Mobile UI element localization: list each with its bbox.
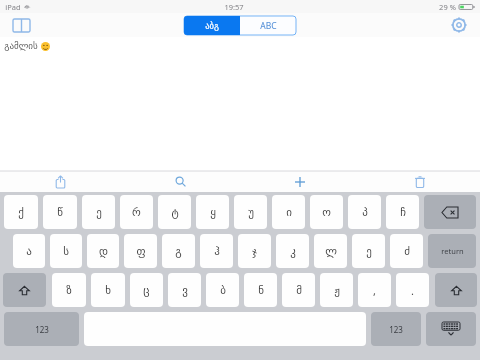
button[interactable]: ჰ bbox=[200, 234, 233, 268]
staticText: ა bbox=[26, 245, 32, 258]
staticText: რ bbox=[132, 206, 141, 219]
staticText: მ bbox=[296, 284, 302, 297]
staticText: ძ bbox=[404, 245, 410, 258]
button[interactable]: return bbox=[428, 234, 476, 268]
staticText: გამლის bbox=[4, 41, 38, 51]
button[interactable]: Shift bbox=[3, 273, 46, 307]
button[interactable]: ვ bbox=[168, 273, 201, 307]
button[interactable]: ნ bbox=[244, 273, 277, 307]
staticText: აბგ bbox=[205, 21, 219, 31]
button[interactable]: Hide keyboard bbox=[426, 312, 476, 346]
button[interactable]: ფ bbox=[124, 234, 157, 268]
button[interactable]: 123 bbox=[4, 312, 79, 346]
button[interactable]: წ bbox=[43, 195, 77, 229]
staticText: 123 bbox=[35, 324, 49, 335]
button[interactable]: Backspace bbox=[424, 195, 476, 229]
staticText: ნ bbox=[258, 284, 264, 297]
staticText: ფ bbox=[136, 245, 146, 258]
staticText: ქ bbox=[18, 206, 24, 219]
button[interactable]: Delete bbox=[360, 171, 480, 192]
staticText: ჩ bbox=[400, 206, 406, 219]
button[interactable]: . bbox=[396, 273, 429, 307]
staticText: ჯ bbox=[252, 245, 257, 258]
button[interactable]: ჯ bbox=[238, 234, 271, 268]
button[interactable]: ხ bbox=[91, 273, 125, 307]
staticText: 19:57 bbox=[224, 2, 244, 12]
staticText: ზ bbox=[66, 284, 72, 297]
staticText: წ bbox=[57, 206, 63, 219]
button[interactable]: დ bbox=[87, 234, 119, 268]
staticText: ხ bbox=[105, 284, 111, 297]
staticText: კ bbox=[290, 245, 296, 258]
button[interactable]: ბ bbox=[206, 273, 239, 307]
staticText: უ bbox=[248, 206, 254, 219]
button[interactable]: ქ bbox=[4, 195, 38, 229]
staticText: 123 bbox=[389, 324, 403, 335]
button[interactable]: ე bbox=[352, 234, 385, 268]
staticText: ს bbox=[63, 245, 69, 258]
button[interactable]: აბგ bbox=[184, 16, 240, 35]
button[interactable]: Share bbox=[0, 171, 120, 192]
button[interactable]: ა bbox=[13, 234, 45, 268]
staticText: . bbox=[411, 283, 414, 298]
staticText: ი bbox=[286, 206, 292, 219]
button[interactable]: რ bbox=[120, 195, 153, 229]
button[interactable]: ჩ bbox=[386, 195, 419, 229]
button[interactable]: Library bbox=[8, 13, 34, 37]
button[interactable]: ე bbox=[82, 195, 115, 229]
button[interactable]: 123 bbox=[371, 312, 421, 346]
staticText: ყ bbox=[210, 206, 216, 219]
button[interactable]: ი bbox=[272, 195, 305, 229]
button[interactable]: Search bbox=[120, 171, 240, 192]
button[interactable]: პ bbox=[348, 195, 381, 229]
staticText: გ bbox=[175, 245, 182, 258]
staticText: return bbox=[441, 246, 464, 256]
staticText: ც bbox=[143, 284, 150, 297]
staticText: ე bbox=[366, 245, 372, 258]
button[interactable]: ო bbox=[310, 195, 343, 229]
staticText: ე bbox=[96, 206, 102, 219]
button[interactable]: ზ bbox=[52, 273, 86, 307]
button[interactable]: უ bbox=[234, 195, 267, 229]
staticText: , bbox=[373, 283, 376, 298]
staticText: ტ bbox=[171, 206, 179, 219]
button[interactable]: ს bbox=[50, 234, 82, 268]
staticText: ჰ bbox=[214, 245, 220, 258]
button[interactable]: Settings bbox=[446, 13, 472, 37]
button[interactable]: ჟ bbox=[320, 273, 353, 307]
staticText: iPad bbox=[5, 2, 21, 12]
staticText: ბ bbox=[220, 284, 226, 297]
button[interactable]: , bbox=[358, 273, 391, 307]
button[interactable]: ყ bbox=[196, 195, 229, 229]
button[interactable]: მ bbox=[282, 273, 315, 307]
staticText: ვ bbox=[182, 284, 188, 297]
button[interactable]: გ bbox=[162, 234, 195, 268]
button[interactable]: Add bbox=[240, 171, 360, 192]
button[interactable]: ც bbox=[130, 273, 163, 307]
button[interactable]: კ bbox=[276, 234, 309, 268]
staticText: 29 % bbox=[439, 2, 456, 12]
button[interactable]: ლ bbox=[314, 234, 347, 268]
button[interactable]: Shift bbox=[435, 273, 477, 307]
staticText: პ bbox=[362, 206, 368, 219]
staticText: ლ bbox=[325, 245, 337, 258]
button[interactable]: ABC bbox=[240, 16, 296, 35]
staticText: დ bbox=[99, 245, 108, 258]
staticText: ო bbox=[322, 206, 331, 219]
staticText: ABC bbox=[260, 20, 277, 32]
button[interactable]: ძ bbox=[390, 234, 423, 268]
button[interactable]: ტ bbox=[158, 195, 191, 229]
staticText: ჟ bbox=[334, 284, 340, 297]
